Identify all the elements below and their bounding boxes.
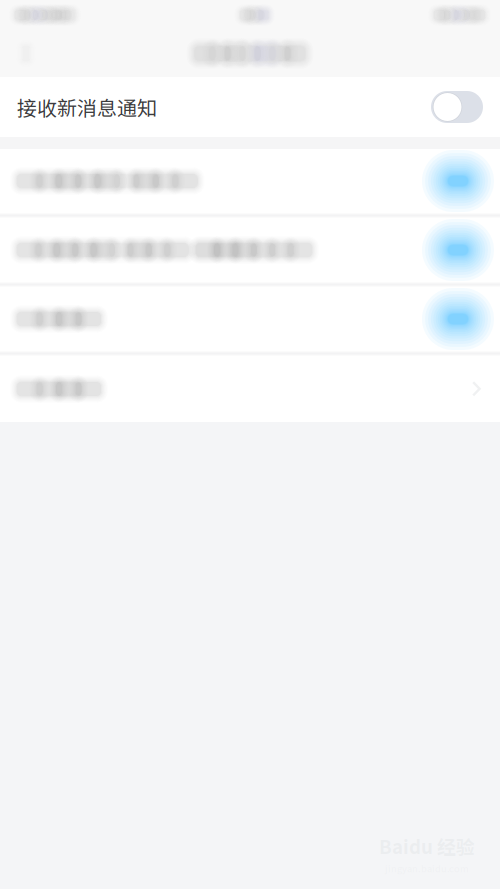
button[interactable] (0, 287, 500, 351)
button[interactable] (0, 218, 500, 282)
button[interactable] (0, 149, 500, 213)
staticText: Baidu 经验 (379, 832, 475, 859)
button[interactable]: 接收新消息通知 (0, 77, 500, 137)
staticText: 接收新消息通知 (17, 92, 157, 121)
button[interactable] (0, 356, 500, 422)
